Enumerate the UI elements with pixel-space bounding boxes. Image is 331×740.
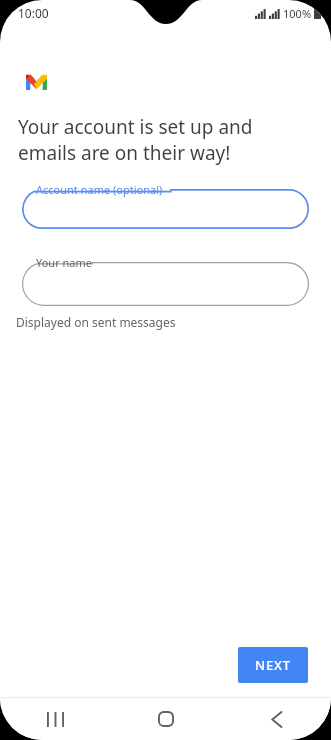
button[interactable]: Account name (optional) <box>22 182 309 229</box>
button[interactable]: NEXT <box>238 647 308 683</box>
staticText: Account name (optional) <box>36 182 163 197</box>
staticText: 10:00 <box>18 5 49 21</box>
button[interactable]: Recents <box>0 698 111 740</box>
staticText: NEXT <box>255 656 291 674</box>
staticText: Your account is set up and emails are on… <box>18 114 291 166</box>
button[interactable]: Home <box>111 698 221 740</box>
button[interactable]: Back <box>221 698 331 740</box>
button[interactable]: Your name <box>22 255 309 306</box>
staticText: 100% <box>283 6 312 21</box>
staticText: Displayed on sent messages <box>16 314 176 330</box>
staticText: Your name <box>36 255 92 270</box>
